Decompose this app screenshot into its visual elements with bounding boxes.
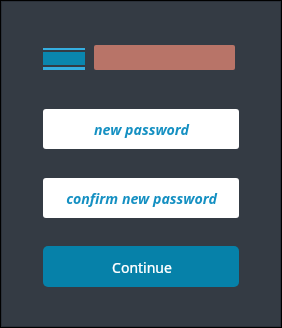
button[interactable]: confirm new password: [43, 178, 239, 218]
staticText: confirm new password: [66, 189, 217, 208]
button[interactable]: new password: [43, 109, 239, 149]
staticText: Continue: [112, 258, 172, 277]
button[interactable]: Continue: [43, 246, 239, 287]
staticText: new password: [94, 120, 189, 139]
button[interactable]: App logo: [43, 48, 85, 70]
